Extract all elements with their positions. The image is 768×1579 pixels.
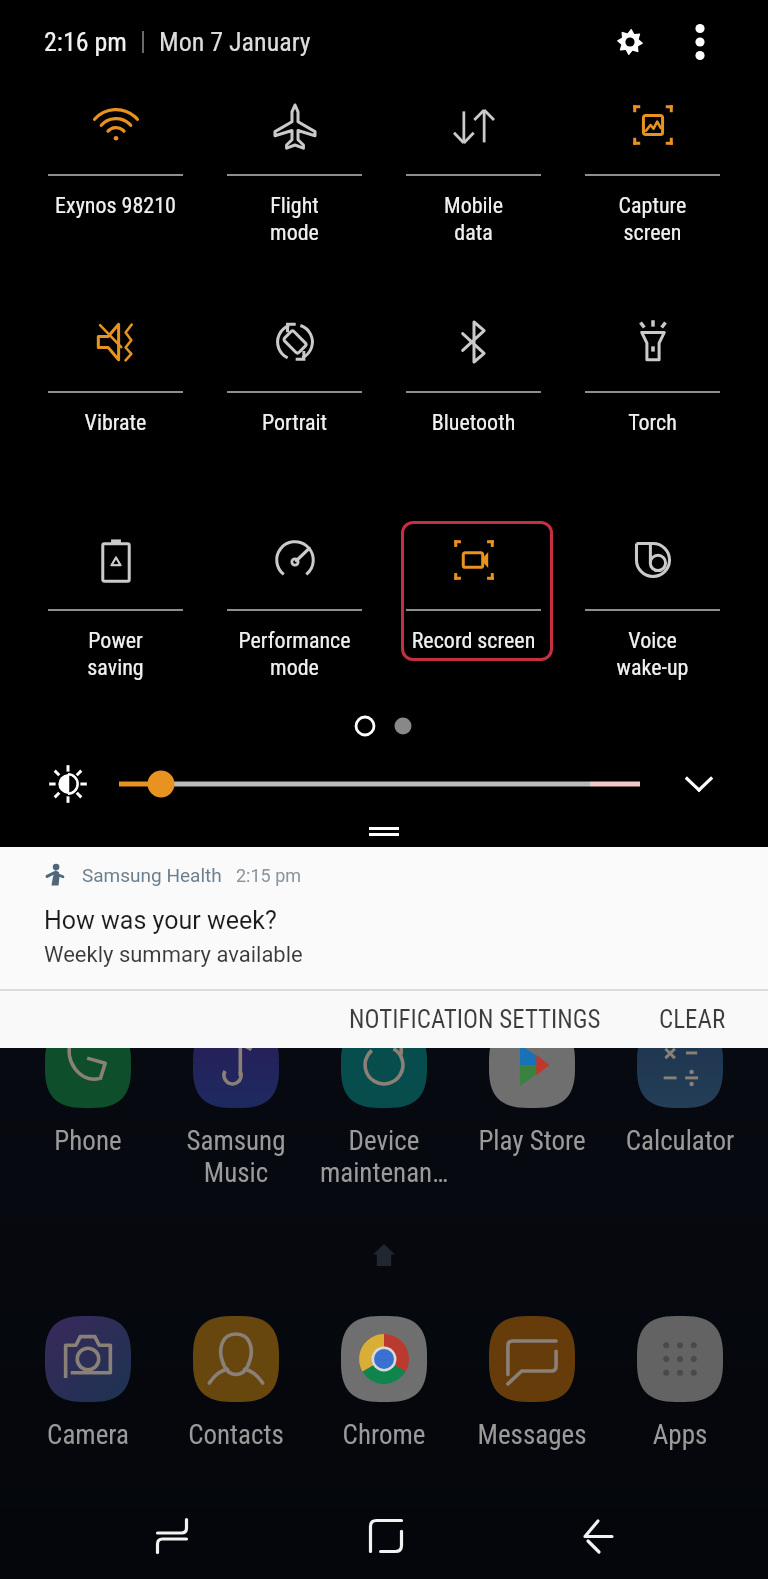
- staticText: Bluetooth: [384, 410, 563, 436]
- button[interactable]: Settings: [606, 18, 654, 66]
- button[interactable]: Exynos 98210: [26, 88, 205, 238]
- staticText: Calculator: [606, 1125, 754, 1157]
- staticText: Torch: [563, 410, 742, 436]
- button[interactable]: NOTIFICATION SETTINGS: [339, 993, 611, 1046]
- button[interactable]: Back: [568, 1504, 632, 1568]
- button[interactable]: Record screen: [384, 523, 563, 673]
- staticText: Weekly summary available: [44, 942, 303, 968]
- staticText: Samsung Music: [162, 1125, 310, 1189]
- button[interactable]: Samsung Music: [162, 1022, 310, 1189]
- button[interactable]: Messages: [458, 1316, 606, 1451]
- button[interactable]: Expand brightness: [676, 761, 722, 807]
- button[interactable]: Contacts: [162, 1316, 310, 1451]
- button[interactable]: Chrome: [310, 1316, 458, 1451]
- staticText: Exynos 98210: [26, 193, 205, 219]
- staticText: How was your week?: [44, 906, 277, 935]
- staticText: CLEAR: [659, 1005, 726, 1034]
- button[interactable]: Voice wake-up: [563, 523, 742, 673]
- staticText: 2:16 pm: [44, 27, 127, 57]
- staticText: Messages: [458, 1419, 606, 1451]
- staticText: Samsung Health: [82, 864, 222, 886]
- button[interactable]: Device maintenan…: [310, 1022, 458, 1189]
- button[interactable]: Camera: [14, 1316, 162, 1451]
- button[interactable]: Mobile data: [384, 88, 563, 238]
- button[interactable]: Portrait: [205, 305, 384, 455]
- staticText: Apps: [606, 1419, 754, 1451]
- staticText: Power saving: [26, 628, 205, 680]
- staticText: Mon 7 January: [159, 27, 311, 57]
- button[interactable]: Power saving: [26, 523, 205, 673]
- button[interactable]: Phone: [14, 1022, 162, 1157]
- staticText: Device maintenan…: [310, 1125, 458, 1189]
- staticText: Flight mode: [205, 193, 384, 245]
- button[interactable]: Torch: [563, 305, 742, 455]
- button[interactable]: Capture screen: [563, 88, 742, 238]
- button[interactable]: More options: [676, 18, 724, 66]
- staticText: Contacts: [162, 1419, 310, 1451]
- button[interactable]: Vibrate: [26, 305, 205, 455]
- staticText: Phone: [14, 1125, 162, 1157]
- staticText: Performance mode: [205, 628, 384, 680]
- staticText: Mobile data: [384, 193, 563, 245]
- button[interactable]: Samsung Health: [0, 847, 768, 989]
- button[interactable]: Calculator: [606, 1022, 754, 1157]
- button[interactable]: Bluetooth: [384, 305, 563, 455]
- staticText: Vibrate: [26, 410, 205, 436]
- button[interactable]: Recent apps: [140, 1504, 204, 1568]
- button[interactable]: Apps: [606, 1316, 754, 1451]
- button[interactable]: Performance mode: [205, 523, 384, 673]
- staticText: Chrome: [310, 1419, 458, 1451]
- staticText: Portrait: [205, 410, 384, 436]
- button[interactable]: Home: [354, 1504, 418, 1568]
- button[interactable]: Play Store: [458, 1022, 606, 1157]
- staticText: Record screen: [384, 628, 563, 654]
- staticText: Camera: [14, 1419, 162, 1451]
- staticText: Voice wake-up: [563, 628, 742, 680]
- staticText: Capture screen: [563, 193, 742, 245]
- button[interactable]: Flight mode: [205, 88, 384, 238]
- button[interactable]: CLEAR: [649, 993, 736, 1046]
- staticText: Play Store: [458, 1125, 606, 1157]
- staticText: NOTIFICATION SETTINGS: [349, 1005, 601, 1034]
- staticText: 2:15 pm: [236, 865, 302, 886]
